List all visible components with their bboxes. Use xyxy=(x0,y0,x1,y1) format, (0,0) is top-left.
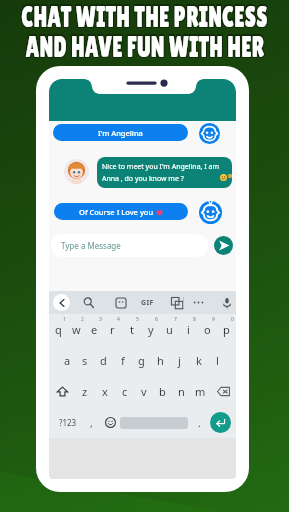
staticText: CHAT WITH THE PRINCESS xyxy=(20,1,267,33)
button[interactable]: w xyxy=(67,314,85,345)
button[interactable]: Of Course I Love you xyxy=(54,203,188,220)
staticText: r xyxy=(110,322,115,337)
staticText: t xyxy=(130,322,134,337)
button[interactable]: n xyxy=(172,376,191,407)
button[interactable]: GIF xyxy=(141,298,154,308)
button[interactable]: q xyxy=(49,314,67,345)
button[interactable]: c xyxy=(115,376,134,407)
staticText: i xyxy=(187,322,190,337)
staticText: 1 xyxy=(63,316,66,323)
staticText: n xyxy=(178,384,185,399)
button[interactable]: Search xyxy=(82,296,95,309)
staticText: Nice to meet you I'm Angelina, I am Anna… xyxy=(102,162,219,183)
staticText: CHAT WITH THE PRINCESS xyxy=(22,0,269,31)
staticText: g xyxy=(138,353,145,368)
staticText: z xyxy=(82,384,88,399)
staticText: AND HAVE FUN WITH HER xyxy=(25,31,265,63)
button[interactable]: Nice to meet you I'm Angelina, I am Anna… xyxy=(97,157,232,188)
staticText: l xyxy=(216,353,219,368)
button[interactable]: Stickers xyxy=(115,297,127,309)
button[interactable]: p xyxy=(217,314,236,345)
button[interactable]: d xyxy=(94,345,113,376)
button[interactable]: ?123 xyxy=(54,407,82,438)
staticText: AND HAVE FUN WITH HER xyxy=(24,28,264,61)
staticText: 8 xyxy=(193,316,196,323)
staticText: CHAT WITH THE PRINCESS xyxy=(22,0,269,32)
staticText: CHAT WITH THE PRINCESS xyxy=(21,0,268,32)
staticText: v xyxy=(141,384,147,399)
staticText: GIF xyxy=(141,298,154,308)
button[interactable]: Bot avatar xyxy=(199,123,220,144)
button[interactable]: e xyxy=(85,314,103,345)
staticText: AND HAVE FUN WITH HER xyxy=(26,30,266,62)
button[interactable]: x xyxy=(95,376,115,407)
button[interactable]: t xyxy=(122,314,141,345)
staticText: b xyxy=(159,384,166,399)
staticText: 4 xyxy=(117,316,120,323)
button[interactable]: m xyxy=(191,376,210,407)
staticText: AND HAVE FUN WITH HER xyxy=(24,31,264,63)
button[interactable]: Emoji xyxy=(100,407,120,438)
button[interactable]: Collapse toolbar xyxy=(53,294,70,311)
staticText: d xyxy=(100,353,107,368)
staticText: s xyxy=(82,353,88,368)
button[interactable]: l xyxy=(208,345,227,376)
button[interactable]: b xyxy=(153,376,172,407)
button[interactable]: Enter xyxy=(210,412,231,433)
staticText: AND HAVE FUN WITH HER xyxy=(26,31,266,63)
staticText: u xyxy=(166,322,173,337)
staticText: c xyxy=(122,384,128,399)
button[interactable]: Send xyxy=(214,236,233,255)
staticText: CHAT WITH THE PRINCESS xyxy=(21,1,268,33)
staticText: p xyxy=(223,322,230,337)
button[interactable]: Translate xyxy=(171,297,183,309)
staticText: 9 xyxy=(212,316,215,323)
button[interactable]: o xyxy=(198,314,217,345)
staticText: AND HAVE FUN WITH HER xyxy=(25,28,265,61)
button[interactable]: More options xyxy=(192,296,205,309)
button[interactable]: r xyxy=(103,314,122,345)
staticText: 7 xyxy=(174,316,177,323)
button[interactable]: Shift xyxy=(49,376,75,407)
button[interactable]: y xyxy=(141,314,160,345)
button[interactable]: s xyxy=(76,345,94,376)
button[interactable]: h xyxy=(151,345,170,376)
button[interactable]: . xyxy=(188,407,210,438)
button[interactable]: , xyxy=(82,407,100,438)
button[interactable]: f xyxy=(113,345,132,376)
staticText: q xyxy=(55,322,62,337)
button[interactable]: u xyxy=(160,314,179,345)
button[interactable]: z xyxy=(75,376,95,407)
staticText: , xyxy=(90,416,93,430)
staticText: m xyxy=(195,384,206,399)
staticText: j xyxy=(178,353,181,368)
staticText: w xyxy=(72,322,81,337)
button[interactable]: v xyxy=(134,376,153,407)
button[interactable]: Type a Message xyxy=(51,234,208,257)
staticText: CHAT WITH THE PRINCESS xyxy=(20,0,267,32)
button[interactable]: i xyxy=(179,314,198,345)
staticText: 3 xyxy=(99,316,102,323)
button[interactable]: I'm Angelina xyxy=(53,124,188,141)
staticText: a xyxy=(64,353,71,368)
button[interactable]: Bot avatar xyxy=(199,201,222,224)
staticText: Type a Message xyxy=(61,240,121,251)
staticText: f xyxy=(121,353,125,368)
button[interactable]: Backspace xyxy=(210,376,236,407)
button[interactable]: k xyxy=(189,345,208,376)
staticText: AND HAVE FUN WITH HER xyxy=(25,30,265,62)
staticText: 2 xyxy=(81,316,84,323)
staticText: I'm Angelina xyxy=(98,128,143,138)
button[interactable]: a xyxy=(58,345,76,376)
button[interactable]: Voice input xyxy=(221,297,233,309)
button[interactable]: g xyxy=(132,345,151,376)
staticText: ?123 xyxy=(59,417,77,428)
staticText: y xyxy=(148,322,154,337)
button[interactable]: j xyxy=(170,345,189,376)
staticText: AND HAVE FUN WITH HER xyxy=(24,30,264,62)
